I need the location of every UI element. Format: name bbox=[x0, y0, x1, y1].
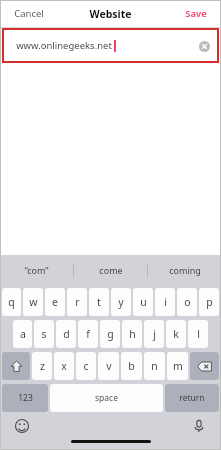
button[interactable]: u bbox=[133, 288, 153, 316]
staticText: g bbox=[107, 327, 114, 341]
button[interactable]: k bbox=[166, 320, 186, 348]
button[interactable]: a bbox=[13, 320, 32, 348]
staticText: l bbox=[197, 327, 200, 341]
staticText: f bbox=[86, 327, 90, 341]
staticText: z bbox=[40, 359, 45, 373]
button[interactable]: Shift bbox=[2, 352, 30, 380]
staticText: s bbox=[41, 327, 47, 341]
button[interactable]: c bbox=[76, 352, 96, 380]
staticText: u bbox=[140, 295, 147, 309]
staticText: Website bbox=[89, 7, 132, 21]
button[interactable]: f bbox=[78, 320, 98, 348]
staticText: t bbox=[97, 295, 101, 309]
button[interactable]: Clear text bbox=[195, 37, 213, 55]
button[interactable]: j bbox=[144, 320, 164, 348]
staticText: x bbox=[61, 359, 67, 373]
staticText: r bbox=[75, 295, 80, 309]
staticText: coming bbox=[169, 264, 201, 276]
staticText: j bbox=[153, 327, 156, 341]
staticText: i bbox=[164, 295, 167, 309]
button[interactable]: i bbox=[155, 288, 175, 316]
button[interactable]: x bbox=[54, 352, 74, 380]
button[interactable]: space bbox=[50, 384, 163, 412]
button[interactable]: coming bbox=[148, 255, 221, 285]
button[interactable]: o bbox=[177, 288, 197, 316]
button[interactable]: return bbox=[165, 384, 219, 412]
staticText: space bbox=[95, 392, 118, 404]
staticText: m bbox=[173, 359, 183, 373]
button[interactable]: Emoji bbox=[12, 416, 32, 436]
staticText: k bbox=[173, 327, 179, 341]
button[interactable]: Dictation bbox=[189, 416, 209, 436]
button[interactable]: Save bbox=[181, 4, 211, 23]
staticText: a bbox=[20, 327, 26, 341]
button[interactable]: z bbox=[32, 352, 52, 380]
staticText: www.onlinegeeks.net bbox=[16, 39, 112, 52]
staticText: v bbox=[106, 359, 112, 373]
staticText: return bbox=[179, 392, 205, 404]
staticText: e bbox=[52, 295, 58, 309]
staticText: o bbox=[184, 295, 191, 309]
button[interactable]: d bbox=[56, 320, 76, 348]
button[interactable]: n bbox=[144, 352, 165, 380]
button[interactable]: w bbox=[23, 288, 43, 316]
button[interactable]: come bbox=[74, 255, 147, 285]
staticText: b bbox=[128, 359, 135, 373]
button[interactable]: 123 bbox=[2, 384, 48, 412]
staticText: “com” bbox=[24, 264, 49, 276]
staticText: p bbox=[206, 295, 213, 309]
staticText: Cancel bbox=[14, 7, 44, 20]
staticText: w bbox=[29, 295, 38, 309]
staticText: c bbox=[83, 359, 89, 373]
button[interactable]: b bbox=[121, 352, 142, 380]
staticText: Save bbox=[185, 7, 207, 20]
button[interactable]: v bbox=[98, 352, 119, 380]
button[interactable]: t bbox=[89, 288, 109, 316]
button[interactable]: l bbox=[188, 320, 208, 348]
button[interactable]: r bbox=[67, 288, 87, 316]
button[interactable]: q bbox=[2, 288, 21, 316]
button[interactable]: g bbox=[100, 320, 120, 348]
staticText: q bbox=[8, 295, 15, 309]
button[interactable]: s bbox=[34, 320, 54, 348]
button[interactable]: Cancel bbox=[10, 4, 48, 23]
button[interactable]: “com” bbox=[0, 255, 73, 285]
staticText: y bbox=[118, 295, 124, 309]
button[interactable]: h bbox=[122, 320, 142, 348]
staticText: h bbox=[129, 327, 136, 341]
button[interactable]: m bbox=[167, 352, 188, 380]
staticText: come bbox=[99, 264, 123, 276]
staticText: d bbox=[63, 327, 70, 341]
button[interactable]: p bbox=[199, 288, 219, 316]
button[interactable]: Backspace bbox=[190, 352, 219, 380]
button[interactable]: y bbox=[111, 288, 131, 316]
button[interactable]: e bbox=[45, 288, 65, 316]
button[interactable]: www.onlinegeeks.net bbox=[2, 28, 219, 63]
staticText: n bbox=[151, 359, 158, 373]
staticText: 123 bbox=[18, 392, 33, 404]
